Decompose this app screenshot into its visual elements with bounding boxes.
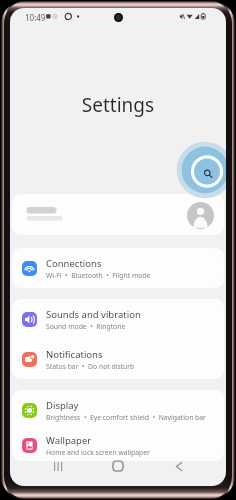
- button[interactable]: Home: [108, 456, 128, 476]
- staticText: Settings: [10, 92, 226, 118]
- button[interactable]: [12, 194, 224, 235]
- staticText: Sounds and vibration: [46, 308, 141, 321]
- staticText: Wi-Fi • Bluetooth • Flight mode: [46, 271, 151, 280]
- staticText: Brightness • Eye comfort shield • Naviga…: [46, 413, 206, 422]
- button[interactable]: Connections: [12, 248, 224, 288]
- staticText: Status bar • Do not disturb: [46, 362, 135, 371]
- staticText: Connections: [46, 257, 102, 270]
- button[interactable]: Search: [176, 141, 226, 201]
- button[interactable]: Recent apps: [47, 456, 67, 476]
- staticText: Wallpaper: [46, 434, 92, 447]
- staticText: Home and lock screen wallpaper: [46, 448, 150, 457]
- button[interactable]: Sounds and vibration: [12, 299, 224, 339]
- button[interactable]: Wallpaper: [12, 430, 224, 461]
- button[interactable]: Back: [169, 456, 189, 476]
- staticText: 10:49: [25, 12, 46, 23]
- staticText: Display: [46, 399, 79, 412]
- button[interactable]: Notifications: [12, 339, 224, 379]
- staticText: Sound mode • Ringtone: [46, 322, 126, 331]
- staticText: Notifications: [46, 348, 103, 361]
- button[interactable]: Display: [12, 390, 224, 430]
